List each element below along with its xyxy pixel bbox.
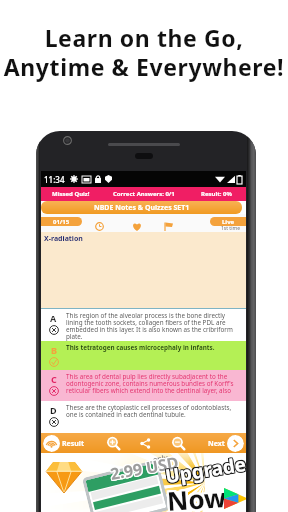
staticText: 2.99 USD (108, 453, 179, 485)
staticText: 2.99 USD (109, 453, 180, 485)
button[interactable]: Correct Answers: 0/1 (101, 187, 187, 201)
button[interactable]: 01/15 (41, 217, 82, 226)
button[interactable]: Missed Quiz! (41, 187, 101, 201)
staticText: 2.99 USD (110, 453, 181, 485)
staticText: Learn on the Go, Anytime & Everywhere! (0, 22, 288, 83)
staticText: Result (62, 439, 84, 449)
staticText: Now (166, 479, 228, 512)
staticText: Upgrade (165, 453, 246, 490)
button[interactable]: D (41, 401, 246, 433)
staticText: Result: 0% (201, 190, 232, 198)
button[interactable]: Live (210, 217, 246, 226)
staticText: NBDE Notes & Quizzes SET1 (94, 203, 190, 213)
staticText: Now (164, 479, 226, 512)
staticText: Upgrade (164, 453, 246, 490)
button[interactable]: Next (204, 435, 244, 452)
button[interactable]: Favourite (131, 220, 143, 232)
staticText: Now (164, 477, 226, 512)
staticText: C (51, 373, 57, 385)
staticText: These are the cytoplastic cell processes… (66, 403, 234, 419)
staticText: 2.99 USD (107, 453, 179, 484)
staticText: Correct Answers: 0/1 (113, 190, 175, 198)
staticText: B (51, 344, 57, 356)
button[interactable]: Result: 0% (187, 187, 246, 201)
staticText: Now (168, 479, 230, 512)
button[interactable]: Zoom in (106, 436, 120, 450)
staticText: Missed Quiz! (52, 190, 90, 198)
staticText: A (50, 312, 57, 324)
button[interactable]: B (41, 341, 246, 370)
staticText: 01/15 (53, 218, 70, 226)
staticText: Now (168, 477, 230, 512)
staticText: D (50, 404, 57, 416)
button[interactable]: Zoom out (171, 436, 185, 450)
staticText: Next (208, 439, 225, 449)
staticText: Upgrade (162, 453, 246, 489)
staticText: Upgrade (164, 453, 246, 488)
staticText: 2.99 USD (108, 453, 180, 484)
staticText: 1st time (221, 225, 240, 232)
staticText: only (152, 453, 170, 465)
staticText: Upgrade (163, 453, 246, 490)
staticText: Upgrade (163, 453, 246, 488)
staticText: 11:34 (44, 174, 65, 185)
staticText: Upgrade (163, 453, 246, 489)
staticText: Upgrade (164, 453, 246, 489)
staticText: This region of the alveolar process is t… (66, 311, 234, 341)
staticText: 2.99 USD (110, 453, 182, 486)
button[interactable]: A (41, 309, 246, 341)
staticText: Upgrade (162, 453, 246, 488)
staticText: Now (164, 481, 226, 512)
button[interactable]: Flag (162, 220, 174, 232)
button[interactable]: only (41, 453, 246, 512)
staticText: 2.99 USD (109, 453, 181, 486)
staticText: Now (166, 477, 228, 512)
staticText: Live (222, 218, 235, 226)
staticText: Now (166, 481, 228, 512)
button[interactable]: C (41, 370, 246, 401)
button[interactable]: Timer (93, 220, 105, 232)
staticText: 2.99 USD (108, 453, 180, 486)
staticText: 2.99 USD (109, 453, 181, 484)
staticText: This area of dental pulp lies directly s… (66, 372, 234, 395)
staticText: Now (168, 481, 230, 512)
button[interactable]: Result (43, 435, 88, 452)
staticText: X-radiation (44, 234, 83, 244)
staticText: This tetratogen causes microcephaly in i… (66, 343, 215, 352)
button[interactable]: Share (138, 436, 152, 450)
